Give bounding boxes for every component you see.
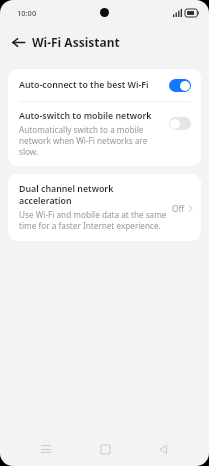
button[interactable]: Toggle on <box>169 79 191 92</box>
button[interactable]: Recent apps <box>33 436 59 462</box>
button[interactable]: Auto-connect to the best Wi-Fi <box>8 69 201 101</box>
staticText: 10:00 <box>17 8 37 18</box>
staticText: Wi-Fi Assistant <box>32 34 120 50</box>
button[interactable]: Back <box>8 32 28 52</box>
button[interactable]: Back <box>150 436 176 462</box>
staticText: Auto-connect to the best Wi-Fi <box>19 79 169 91</box>
button[interactable]: Dual channel network acceleration <box>8 174 201 241</box>
staticText: Use Wi-Fi and mobile data at the same ti… <box>19 209 168 231</box>
staticText: Dual channel network acceleration <box>19 183 168 207</box>
staticText: Automatically switch to a mobile network… <box>19 124 163 157</box>
button[interactable]: Home <box>92 436 118 462</box>
button[interactable]: Auto-switch to mobile network <box>8 102 201 166</box>
staticText: Off <box>172 203 185 214</box>
staticText: Auto-switch to mobile network <box>19 110 152 122</box>
button[interactable]: Toggle off <box>169 117 191 130</box>
